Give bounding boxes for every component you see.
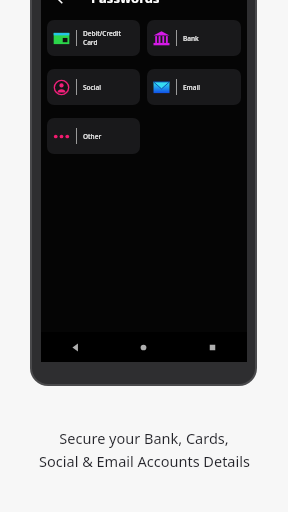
staticText: Other bbox=[83, 132, 102, 141]
staticText: Social & Email Accounts Details bbox=[39, 451, 250, 471]
staticText: Email bbox=[183, 83, 201, 92]
staticText: Social bbox=[83, 83, 101, 92]
button[interactable]: Other bbox=[47, 118, 140, 154]
button[interactable]: Debit/Credit Card bbox=[47, 20, 140, 56]
button[interactable]: Back bbox=[51, 0, 75, 10]
button[interactable]: Email bbox=[147, 69, 241, 105]
button[interactable]: Back bbox=[41, 332, 109, 362]
button[interactable]: Bank bbox=[147, 20, 241, 56]
staticText: Secure your Bank, Cards, bbox=[59, 428, 229, 448]
staticText: Passwords bbox=[91, 0, 160, 7]
button[interactable]: Recents bbox=[178, 332, 247, 362]
button[interactable]: Home bbox=[109, 332, 178, 362]
staticText: Bank bbox=[183, 34, 199, 43]
button[interactable]: Social bbox=[47, 69, 140, 105]
staticText: Debit/Credit Card bbox=[83, 29, 136, 47]
